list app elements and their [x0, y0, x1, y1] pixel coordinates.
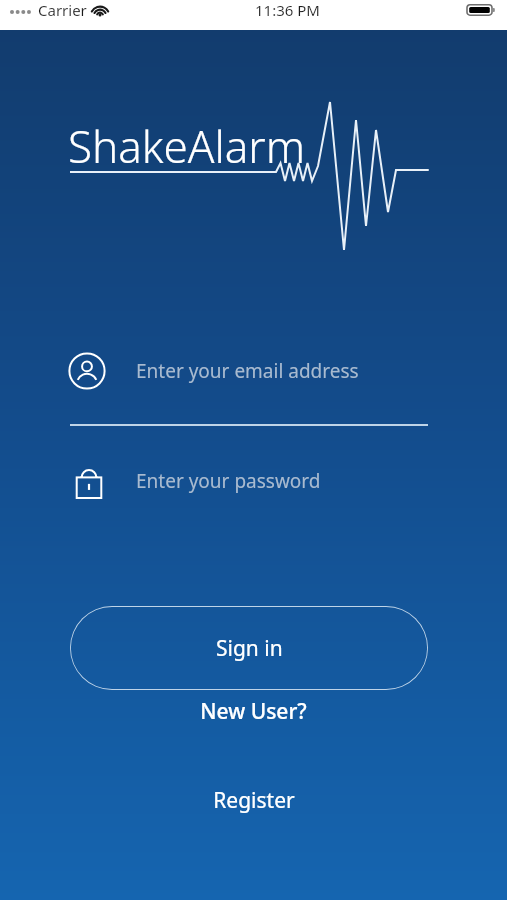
button[interactable]: Sign in: [70, 606, 428, 690]
staticText: Carrier: [38, 0, 87, 20]
button[interactable]: Enter your email address: [0, 340, 507, 402]
button[interactable]: Enter your password: [0, 450, 507, 512]
staticText: New User?: [200, 697, 307, 726]
button[interactable]: New User?: [186, 693, 321, 730]
staticText: Enter your email address: [136, 358, 359, 384]
staticText: ShakeAlarm: [68, 116, 305, 176]
staticText: Register: [213, 786, 295, 815]
staticText: Enter your password: [136, 468, 321, 494]
button[interactable]: Register: [197, 781, 311, 820]
staticText: Sign in: [216, 634, 283, 663]
staticText: 11:36 PM: [255, 0, 320, 20]
